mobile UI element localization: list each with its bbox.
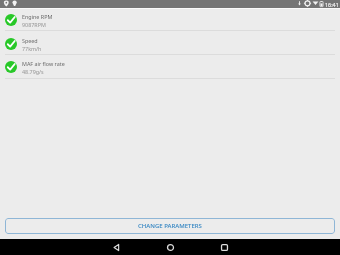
staticText: 48.79g/s [22,68,44,75]
button[interactable]: Recents [210,239,238,255]
button[interactable]: Speed [0,32,340,55]
staticText: 16:41 [325,1,339,8]
staticText: MAF air flow rate [22,60,65,67]
button[interactable]: Home [156,239,184,255]
staticText: 9087RPM [22,21,46,28]
staticText: CHANGE PARAMETERS [138,222,202,230]
staticText: Speed [22,37,38,44]
button[interactable]: Engine RPM [0,8,340,31]
button[interactable]: MAF air flow rate [0,55,340,78]
button[interactable]: Back [102,239,130,255]
staticText: Engine RPM [22,13,53,20]
staticText: 77km/h [22,45,42,52]
button[interactable]: CHANGE PARAMETERS [5,218,335,234]
